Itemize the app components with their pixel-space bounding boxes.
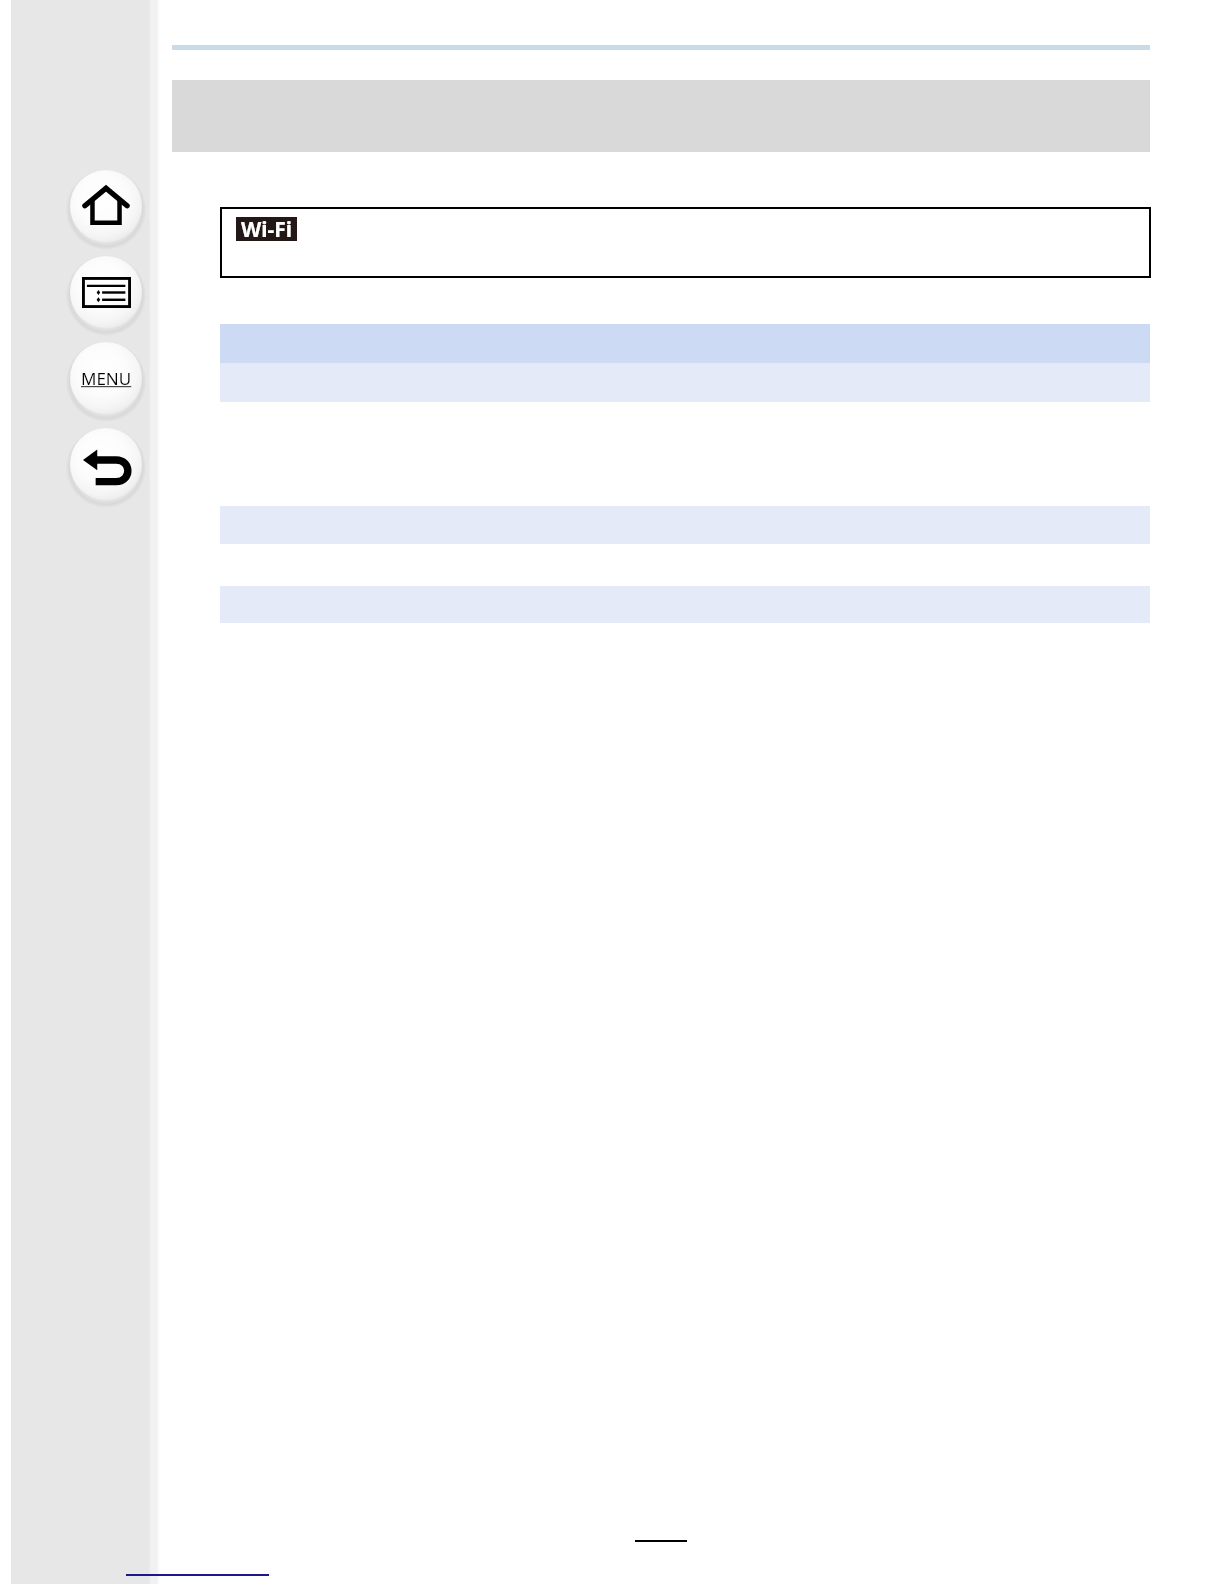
button[interactable]: Back to index — [126, 1566, 269, 1580]
button[interactable]: Back — [58, 416, 154, 512]
button[interactable]: Menu — [58, 330, 154, 426]
staticText: Wi-Fi — [241, 215, 293, 239]
button[interactable]: Wi-Fi — [220, 207, 1151, 278]
staticText: MENU — [81, 367, 132, 390]
button[interactable]: Home — [58, 158, 154, 254]
button[interactable]: Table of contents — [58, 244, 154, 340]
